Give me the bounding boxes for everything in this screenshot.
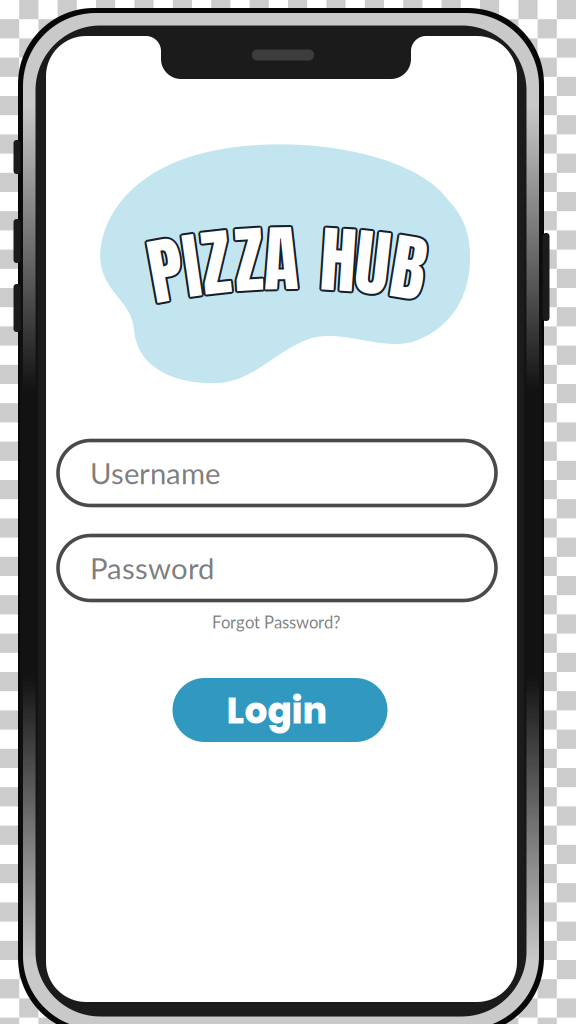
- staticText: P: [150, 218, 184, 326]
- staticText: B: [389, 214, 423, 322]
- staticText: U: [355, 207, 389, 315]
- staticText: Password: [90, 550, 214, 586]
- staticText: Z: [200, 207, 230, 315]
- staticText: B: [390, 212, 424, 321]
- staticText: I: [183, 212, 199, 320]
- staticText: H: [322, 206, 358, 314]
- staticText: B: [391, 214, 425, 322]
- staticText: I: [181, 212, 197, 320]
- staticText: A: [263, 204, 298, 313]
- staticText: P: [149, 216, 183, 325]
- staticText: A: [263, 202, 298, 311]
- staticText: B: [393, 212, 427, 321]
- staticText: P: [148, 218, 182, 326]
- staticText: A: [265, 206, 300, 314]
- staticText: Z: [234, 204, 264, 312]
- staticText: Z: [236, 206, 266, 314]
- button[interactable]: Username: [58, 440, 496, 505]
- staticText: Z: [201, 208, 231, 317]
- staticText: B: [393, 214, 427, 322]
- staticText: U: [355, 211, 389, 319]
- staticText: I: [185, 213, 201, 322]
- staticText: U: [354, 207, 388, 316]
- staticText: H: [319, 207, 355, 315]
- staticText: P: [147, 216, 181, 325]
- staticText: U: [355, 209, 389, 317]
- staticText: H: [320, 206, 356, 314]
- staticText: P: [149, 218, 183, 327]
- staticText: Username: [90, 455, 220, 491]
- staticText: I: [182, 210, 198, 319]
- staticText: Z: [202, 210, 232, 318]
- staticText: Z: [233, 207, 263, 315]
- staticText: H: [322, 204, 358, 313]
- staticText: U: [354, 210, 388, 318]
- staticText: P: [151, 216, 185, 325]
- staticText: Forgot Password?: [212, 612, 340, 632]
- staticText: U: [357, 207, 391, 316]
- staticText: Z: [199, 208, 229, 317]
- staticText: Z: [232, 206, 262, 314]
- staticText: Z: [234, 208, 264, 316]
- button[interactable]: Forgot Password?: [206, 606, 346, 638]
- staticText: Z: [234, 206, 264, 314]
- staticText: I: [185, 212, 201, 320]
- staticText: Z: [202, 207, 232, 315]
- staticText: Z: [235, 207, 265, 315]
- staticText: A: [265, 203, 300, 311]
- staticText: Z: [235, 204, 265, 313]
- staticText: H: [319, 204, 355, 313]
- staticText: P: [148, 215, 182, 323]
- staticText: A: [262, 203, 297, 311]
- staticText: Z: [200, 210, 230, 318]
- staticText: I: [183, 210, 199, 318]
- button[interactable]: Login: [172, 678, 387, 742]
- staticText: B: [393, 215, 427, 323]
- staticText: H: [318, 206, 354, 314]
- staticText: B: [391, 212, 425, 320]
- staticText: U: [357, 210, 391, 318]
- staticText: P: [149, 214, 183, 323]
- staticText: I: [182, 213, 198, 322]
- staticText: Z: [201, 210, 231, 319]
- staticText: P: [150, 215, 184, 323]
- staticText: Z: [201, 206, 231, 315]
- staticText: U: [357, 209, 391, 317]
- staticText: B: [391, 216, 425, 324]
- staticText: H: [320, 204, 356, 312]
- staticText: I: [185, 210, 201, 319]
- button[interactable]: Password: [58, 535, 496, 600]
- staticText: A: [262, 206, 297, 314]
- staticText: Login: [226, 686, 327, 736]
- staticText: A: [261, 204, 296, 313]
- staticText: H: [320, 208, 356, 316]
- staticText: B: [390, 215, 424, 323]
- staticText: Z: [203, 208, 233, 317]
- staticText: A: [263, 206, 298, 315]
- staticText: H: [322, 207, 358, 315]
- staticText: U: [353, 209, 387, 317]
- staticText: I: [183, 214, 199, 322]
- staticText: Z: [233, 204, 263, 313]
- staticText: A: [265, 204, 300, 313]
